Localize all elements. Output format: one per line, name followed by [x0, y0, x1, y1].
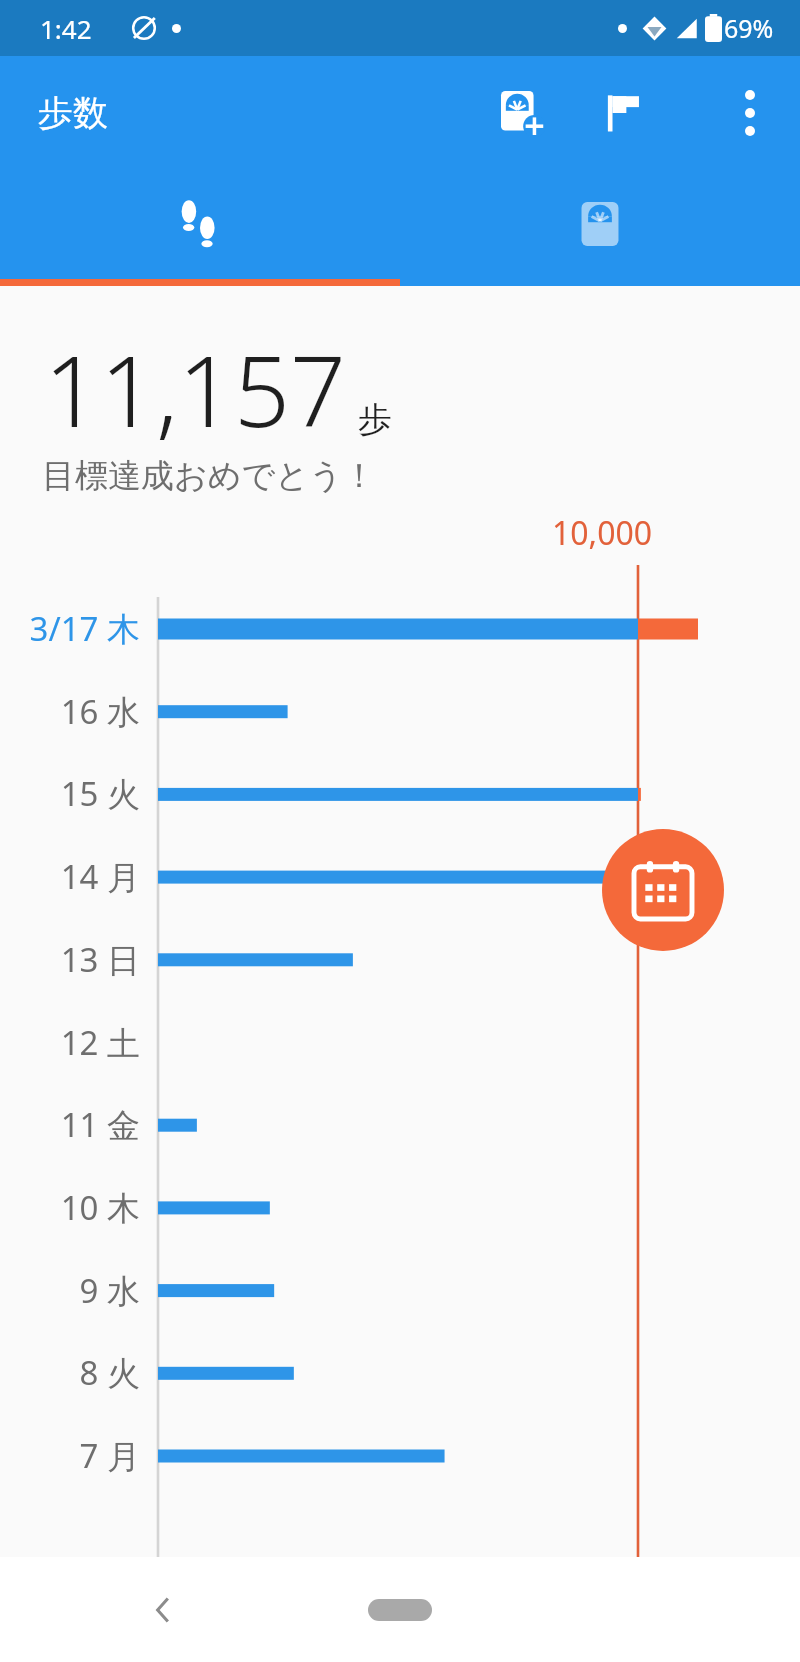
staticText: 10 木 — [0, 1185, 140, 1230]
staticText: 15 火 — [0, 771, 140, 816]
staticText: 7 月 — [0, 1433, 140, 1478]
staticText: 8 火 — [0, 1350, 140, 1395]
staticText: 14 月 — [0, 854, 140, 899]
staticText: 10,000 — [552, 511, 653, 555]
staticText: 1:42 — [40, 11, 92, 46]
staticText: 3/17 木 — [0, 606, 140, 651]
button[interactable]: 戻る — [128, 1574, 200, 1646]
staticText: 歩数 — [38, 91, 108, 135]
staticText: 69% — [724, 11, 774, 45]
staticText: 9 水 — [0, 1268, 140, 1313]
staticText: 11,157 — [44, 322, 346, 455]
staticText: 歩 — [358, 398, 392, 441]
staticText: 12 土 — [0, 1020, 140, 1065]
button[interactable]: 体重を追加 — [485, 75, 561, 151]
button[interactable]: 歩数タブ — [0, 169, 400, 279]
staticText: 16 水 — [0, 689, 140, 734]
staticText: 13 日 — [0, 937, 140, 982]
button[interactable]: 日付を選択 — [602, 829, 724, 951]
staticText: 目標達成おめでとう！ — [42, 455, 376, 497]
button[interactable]: その他のオプション — [712, 75, 788, 151]
staticText: 11 金 — [0, 1102, 140, 1147]
button[interactable]: 目標 — [585, 75, 661, 151]
button[interactable]: 体重タブ — [400, 169, 800, 279]
button[interactable]: ホーム — [368, 1599, 432, 1621]
